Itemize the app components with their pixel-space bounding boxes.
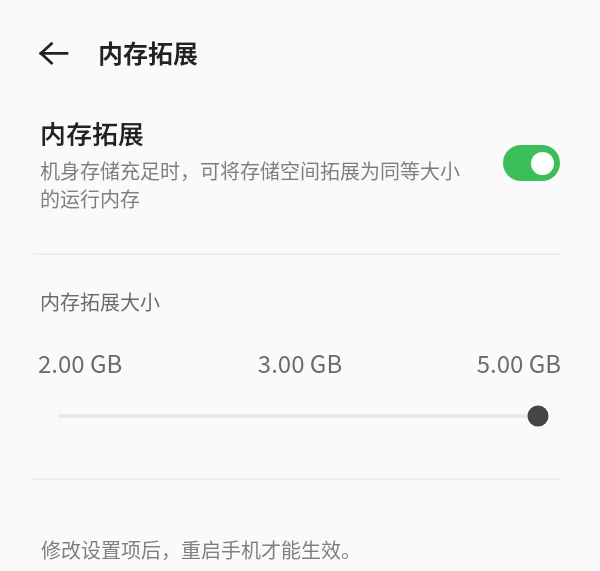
- staticText: 3.00 GB: [213, 345, 387, 380]
- staticText: 内存拓展: [98, 34, 199, 70]
- button[interactable]: Back: [26, 26, 80, 80]
- staticText: 内存拓展: [40, 114, 145, 152]
- staticText: 5.00 GB: [387, 345, 561, 380]
- staticText: 修改设置项后，重启手机才能生效。: [41, 535, 361, 564]
- button[interactable]: 内存拓展: [0, 102, 600, 226]
- staticText: 2.00 GB: [38, 345, 213, 380]
- button[interactable]: Memory size slider: [40, 396, 560, 436]
- staticText: 内存拓展大小: [40, 287, 160, 316]
- button[interactable]: Memory extension toggle: [503, 145, 560, 181]
- staticText: 机身存储充足时，可将存储空间拓展为同等大小的运行内存: [40, 156, 470, 213]
